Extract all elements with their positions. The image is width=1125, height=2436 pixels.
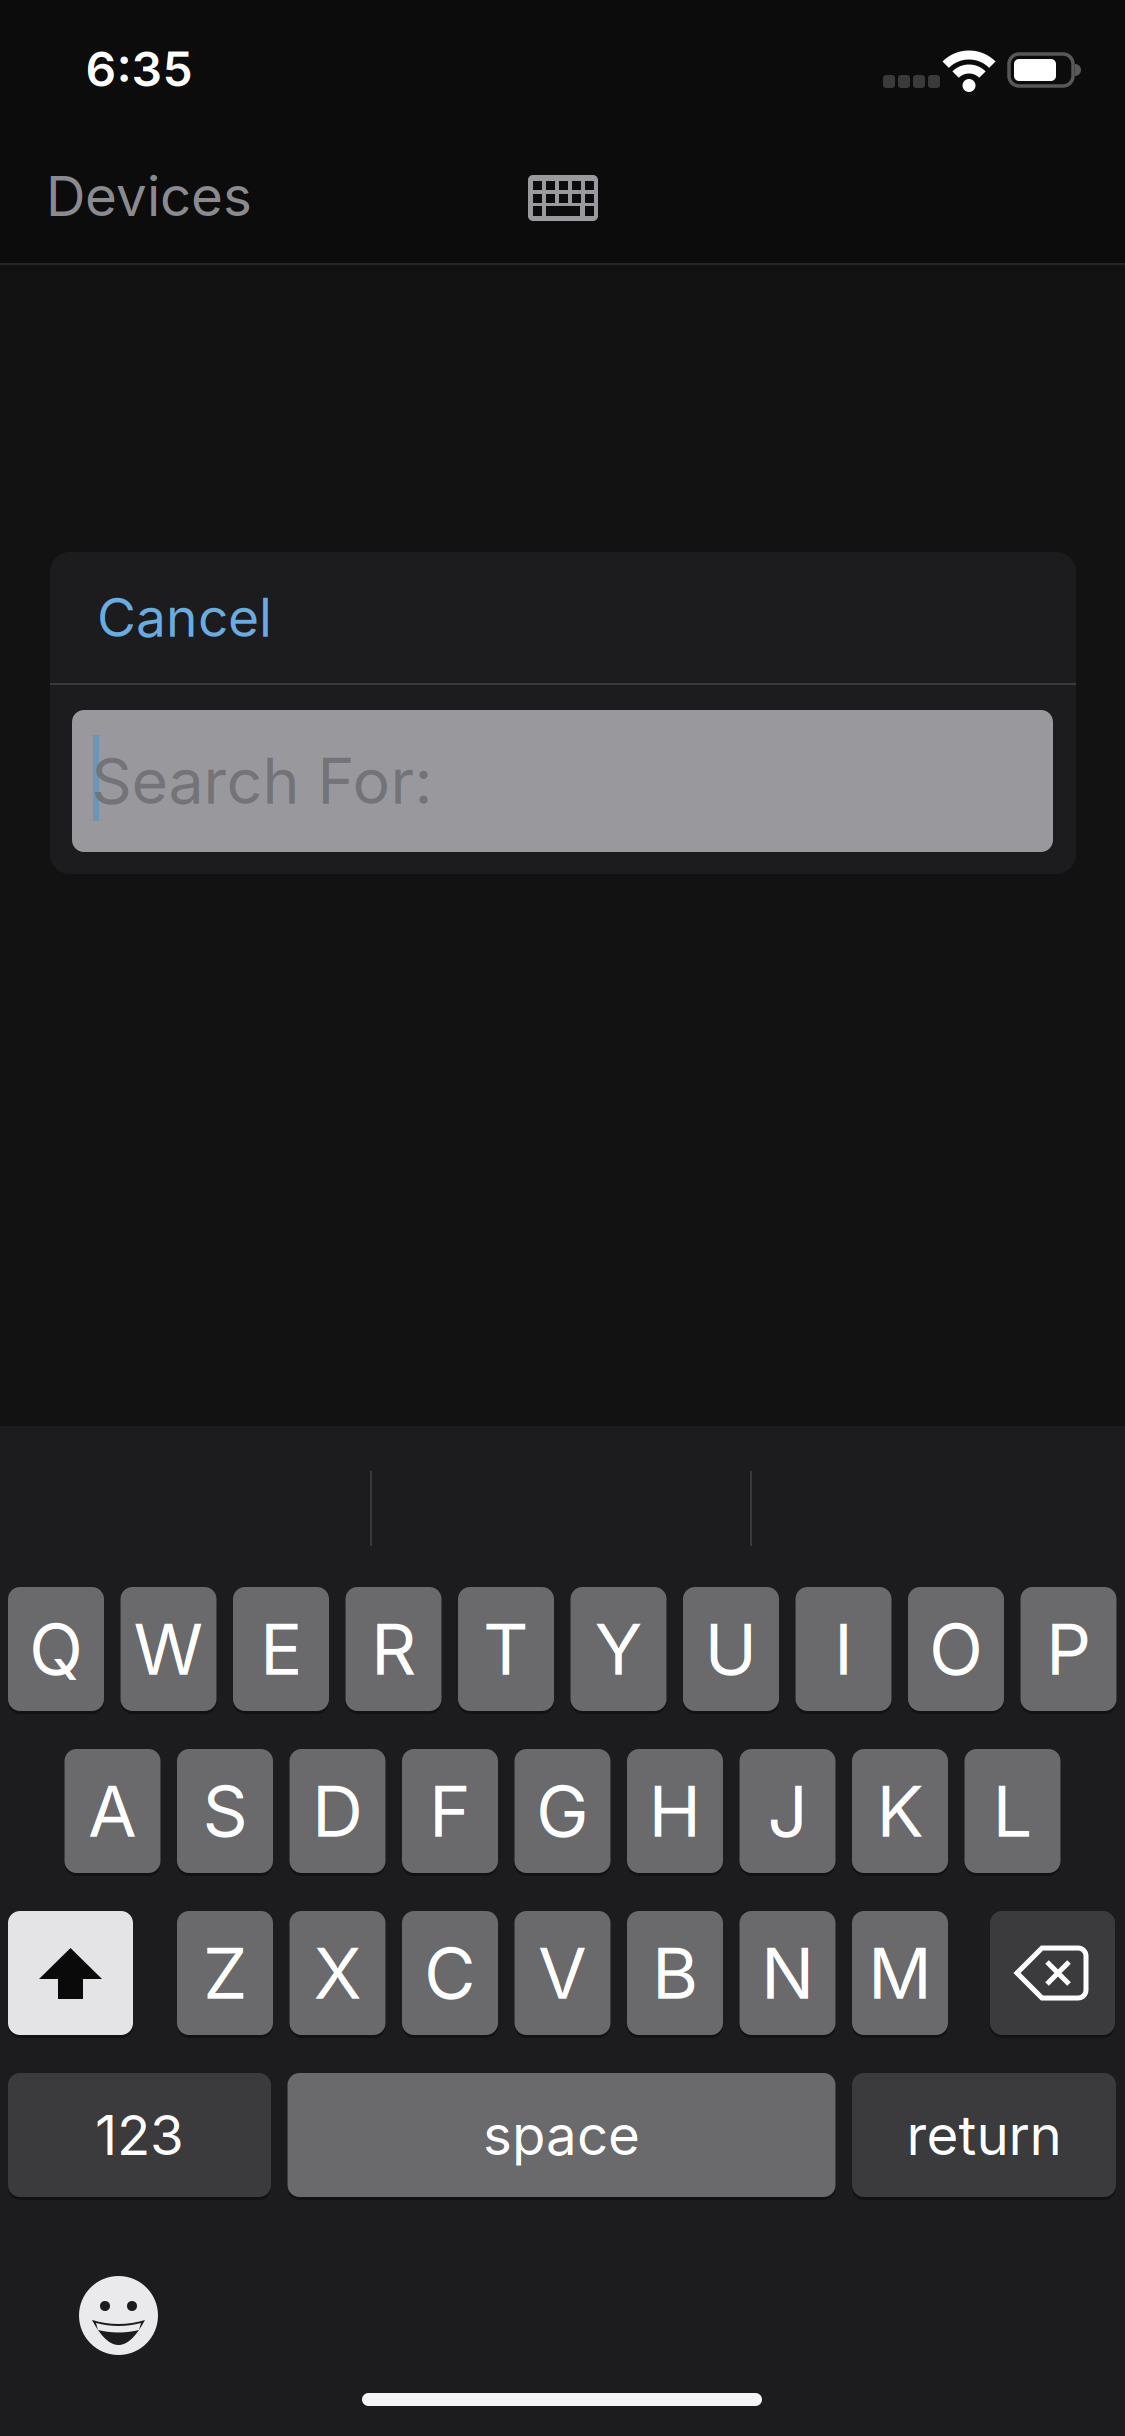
staticText: M xyxy=(868,1930,932,2016)
staticText: W xyxy=(133,1606,203,1692)
button[interactable]: I xyxy=(795,1587,891,1711)
staticText: N xyxy=(761,1930,814,2016)
button[interactable]: Cancel xyxy=(97,585,272,649)
staticText: Cancel xyxy=(97,585,272,649)
staticText: P xyxy=(1046,1606,1091,1692)
staticText: D xyxy=(312,1768,363,1854)
staticText: A xyxy=(88,1768,137,1854)
staticText: Search For: xyxy=(91,743,432,819)
staticText: C xyxy=(424,1930,476,2016)
staticText: S xyxy=(202,1768,247,1854)
staticText: B xyxy=(652,1930,698,2016)
button[interactable]: L xyxy=(964,1749,1060,1873)
button[interactable]: J xyxy=(739,1749,835,1873)
button[interactable]: T xyxy=(458,1587,554,1711)
button[interactable]: Devices xyxy=(46,163,252,229)
button[interactable]: M xyxy=(852,1911,948,2035)
staticText: L xyxy=(992,1768,1032,1854)
staticText: I xyxy=(834,1606,853,1692)
staticText: 6:35 xyxy=(85,40,192,98)
staticText: X xyxy=(313,1930,361,2016)
button[interactable]: Shift xyxy=(8,1911,133,2035)
button[interactable]: P xyxy=(1020,1587,1116,1711)
button[interactable]: space xyxy=(287,2073,835,2197)
staticText: F xyxy=(429,1768,471,1854)
button[interactable]: R xyxy=(345,1587,441,1711)
button[interactable]: O xyxy=(908,1587,1004,1711)
staticText: K xyxy=(876,1768,923,1854)
staticText: R xyxy=(371,1606,416,1692)
staticText: U xyxy=(704,1606,757,1692)
staticText: G xyxy=(536,1768,589,1854)
button[interactable]: K xyxy=(852,1749,948,1873)
button[interactable]: C xyxy=(402,1911,498,2035)
staticText: space xyxy=(483,2102,640,2168)
staticText: Devices xyxy=(46,163,252,229)
staticText: Q xyxy=(29,1606,83,1692)
button[interactable]: H xyxy=(627,1749,723,1873)
button[interactable]: G xyxy=(514,1749,610,1873)
button[interactable]: D xyxy=(289,1749,385,1873)
button[interactable]: return xyxy=(852,2073,1116,2197)
button[interactable]: U xyxy=(683,1587,779,1711)
staticText: O xyxy=(929,1606,983,1692)
staticText: return xyxy=(906,2102,1061,2168)
staticText: J xyxy=(767,1768,807,1854)
button[interactable]: Delete xyxy=(990,1911,1115,2035)
button[interactable]: F xyxy=(402,1749,498,1873)
button[interactable]: 123 xyxy=(8,2073,271,2197)
staticText: 123 xyxy=(95,2102,184,2168)
button[interactable]: Y xyxy=(570,1587,666,1711)
button[interactable]: Z xyxy=(177,1911,273,2035)
staticText: H xyxy=(648,1768,701,1854)
button[interactable]: W xyxy=(120,1587,216,1711)
button[interactable]: E xyxy=(233,1587,329,1711)
staticText: Z xyxy=(203,1930,247,2016)
button[interactable]: Emoji xyxy=(79,2276,158,2355)
staticText: V xyxy=(538,1930,587,2016)
button[interactable]: Keyboard xyxy=(528,175,598,221)
button[interactable]: X xyxy=(289,1911,385,2035)
staticText: T xyxy=(483,1606,529,1692)
button[interactable]: V xyxy=(514,1911,610,2035)
button[interactable]: Search For: xyxy=(72,710,1053,852)
button[interactable]: S xyxy=(177,1749,273,1873)
button[interactable]: Q xyxy=(8,1587,104,1711)
staticText: Y xyxy=(594,1606,642,1692)
staticText: E xyxy=(260,1606,302,1692)
button[interactable]: B xyxy=(627,1911,723,2035)
button[interactable]: N xyxy=(739,1911,835,2035)
button[interactable]: A xyxy=(64,1749,160,1873)
